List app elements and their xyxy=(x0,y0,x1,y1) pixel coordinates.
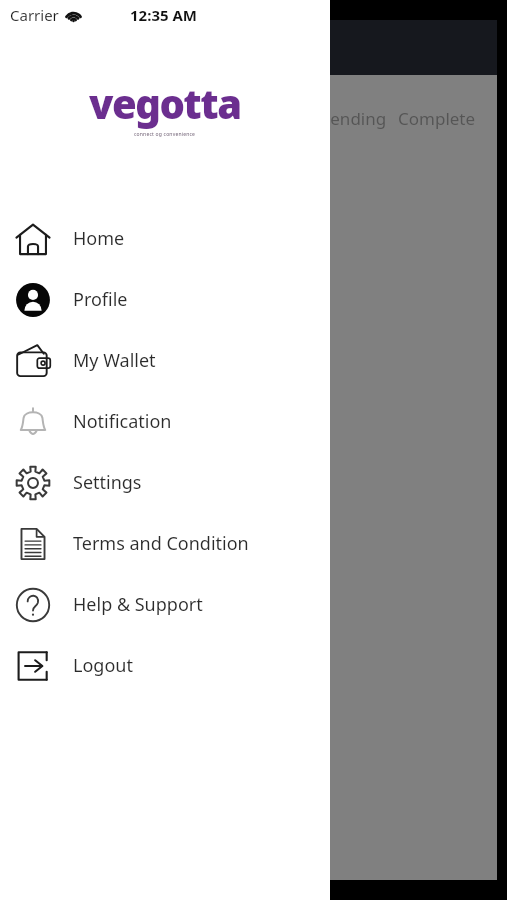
button[interactable]: Complete xyxy=(398,107,476,130)
staticText: My Wallet xyxy=(73,348,156,373)
button[interactable]: Notification xyxy=(0,391,330,452)
staticText: Pending xyxy=(320,107,387,130)
staticText: Settings xyxy=(73,470,142,495)
button[interactable]: Help & Support xyxy=(0,574,330,635)
staticText: Help & Support xyxy=(73,592,203,617)
staticText: Complete xyxy=(398,107,476,130)
staticText: Terms and Condition xyxy=(73,531,249,556)
button[interactable]: Settings xyxy=(0,452,330,513)
staticText: connect og convenience xyxy=(134,131,196,138)
staticText: Carrier xyxy=(10,5,59,25)
staticText: Home xyxy=(73,226,125,251)
button[interactable]: My Wallet xyxy=(0,330,330,391)
staticText: vegotta xyxy=(89,76,241,130)
staticText: Logout xyxy=(73,653,133,678)
staticText: 12:35 AM xyxy=(130,5,197,25)
button[interactable]: Terms and Condition xyxy=(0,513,330,574)
button[interactable]: Pending xyxy=(320,107,387,130)
button[interactable]: Home xyxy=(0,208,330,269)
button[interactable]: Logout xyxy=(0,635,330,696)
button[interactable]: Profile xyxy=(0,269,330,330)
staticText: Notification xyxy=(73,409,172,434)
staticText: Profile xyxy=(73,287,128,312)
